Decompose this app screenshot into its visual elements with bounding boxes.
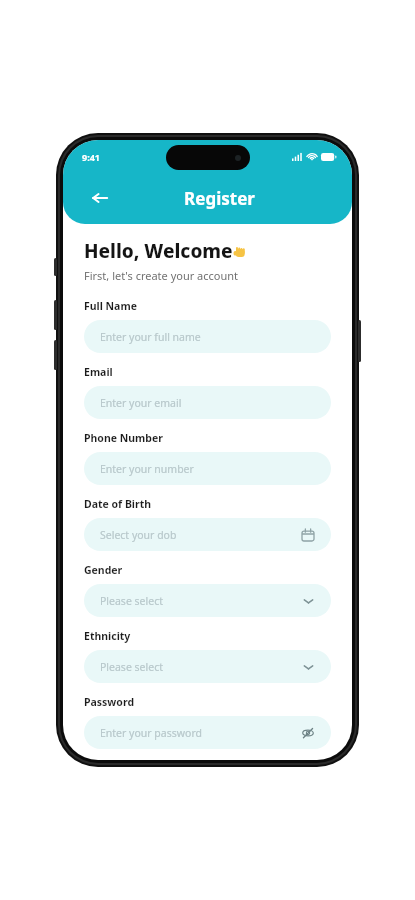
button[interactable]: Please select (84, 584, 331, 617)
button[interactable]: Select your dob (84, 518, 331, 551)
staticText: Full Name (84, 299, 137, 313)
staticText: Enter your email (100, 396, 315, 410)
staticText: Ethnicity (84, 629, 131, 643)
staticText: Enter your password (100, 726, 301, 740)
staticText: Gender (84, 563, 123, 577)
other: Open options (301, 660, 315, 674)
staticText: Password (84, 695, 135, 709)
button[interactable]: Enter your full name (84, 320, 331, 353)
other: Pick date (301, 528, 315, 542)
staticText: Enter your full name (100, 330, 315, 344)
staticText: Register (101, 187, 338, 210)
staticText: Select your dob (100, 528, 301, 542)
button[interactable]: Back (85, 183, 115, 213)
button[interactable]: Enter your number (84, 452, 331, 485)
other: Show password (301, 726, 315, 740)
staticText: 9:41 (82, 151, 100, 163)
staticText: Date of Birth (84, 497, 152, 511)
staticText: Hello, Welcome (84, 238, 233, 264)
button[interactable]: Enter your password (84, 716, 331, 749)
staticText: Email (84, 365, 113, 379)
staticText: Please select (100, 594, 301, 608)
staticText: First, let's create your account (84, 268, 239, 283)
staticText: Enter your number (100, 462, 315, 476)
button[interactable]: Please select (84, 650, 331, 683)
staticText: Phone Number (84, 431, 163, 445)
other: Open options (301, 594, 315, 608)
button[interactable]: Enter your email (84, 386, 331, 419)
staticText: Please select (100, 660, 301, 674)
